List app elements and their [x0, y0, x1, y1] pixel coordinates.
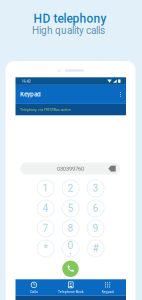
button[interactable]: #	[86, 239, 105, 258]
staticText: 030399760	[57, 165, 84, 172]
staticText: 9	[93, 222, 99, 234]
button[interactable]: 6	[86, 199, 105, 218]
button[interactable]: 0	[61, 239, 80, 258]
staticText: Calls	[30, 290, 38, 294]
button[interactable]: 3	[86, 179, 105, 198]
staticText: Keypad	[102, 290, 114, 294]
staticText: 2	[68, 182, 74, 194]
button[interactable]: 1	[36, 179, 55, 198]
staticText: Telephone Book	[58, 290, 84, 294]
button[interactable]: 2	[61, 179, 80, 198]
staticText: +	[69, 251, 72, 256]
button[interactable]: 9	[86, 219, 105, 238]
button[interactable]: Call	[60, 259, 80, 279]
staticText: 7	[43, 222, 49, 234]
staticText: 8	[68, 222, 74, 234]
staticText: 0	[68, 240, 74, 252]
staticText: 3	[93, 182, 99, 194]
button[interactable]: 7	[36, 219, 55, 238]
button[interactable]: *	[36, 239, 55, 258]
staticText: 1	[43, 182, 49, 194]
button[interactable]: 4	[36, 199, 55, 218]
button[interactable]: Keypad	[89, 279, 126, 296]
button[interactable]: More options	[116, 87, 124, 101]
staticText: 4	[43, 202, 49, 214]
staticText: 6	[93, 202, 99, 214]
staticText: 16:42	[21, 79, 30, 83]
button[interactable]: Telephone Book	[52, 279, 89, 296]
button[interactable]: Calls	[15, 279, 52, 296]
staticText: HD telephony	[33, 12, 106, 26]
staticText: High quality calls	[32, 25, 105, 36]
button[interactable]: Delete	[106, 163, 118, 175]
button[interactable]: 8	[61, 219, 80, 238]
staticText: *	[44, 242, 48, 254]
button[interactable]: 5	[61, 199, 80, 218]
staticText: 5	[68, 202, 74, 214]
staticText: #	[93, 242, 99, 254]
staticText: Keypad	[20, 91, 41, 98]
staticText: Telephony via FRITZ!Box active	[20, 107, 71, 112]
